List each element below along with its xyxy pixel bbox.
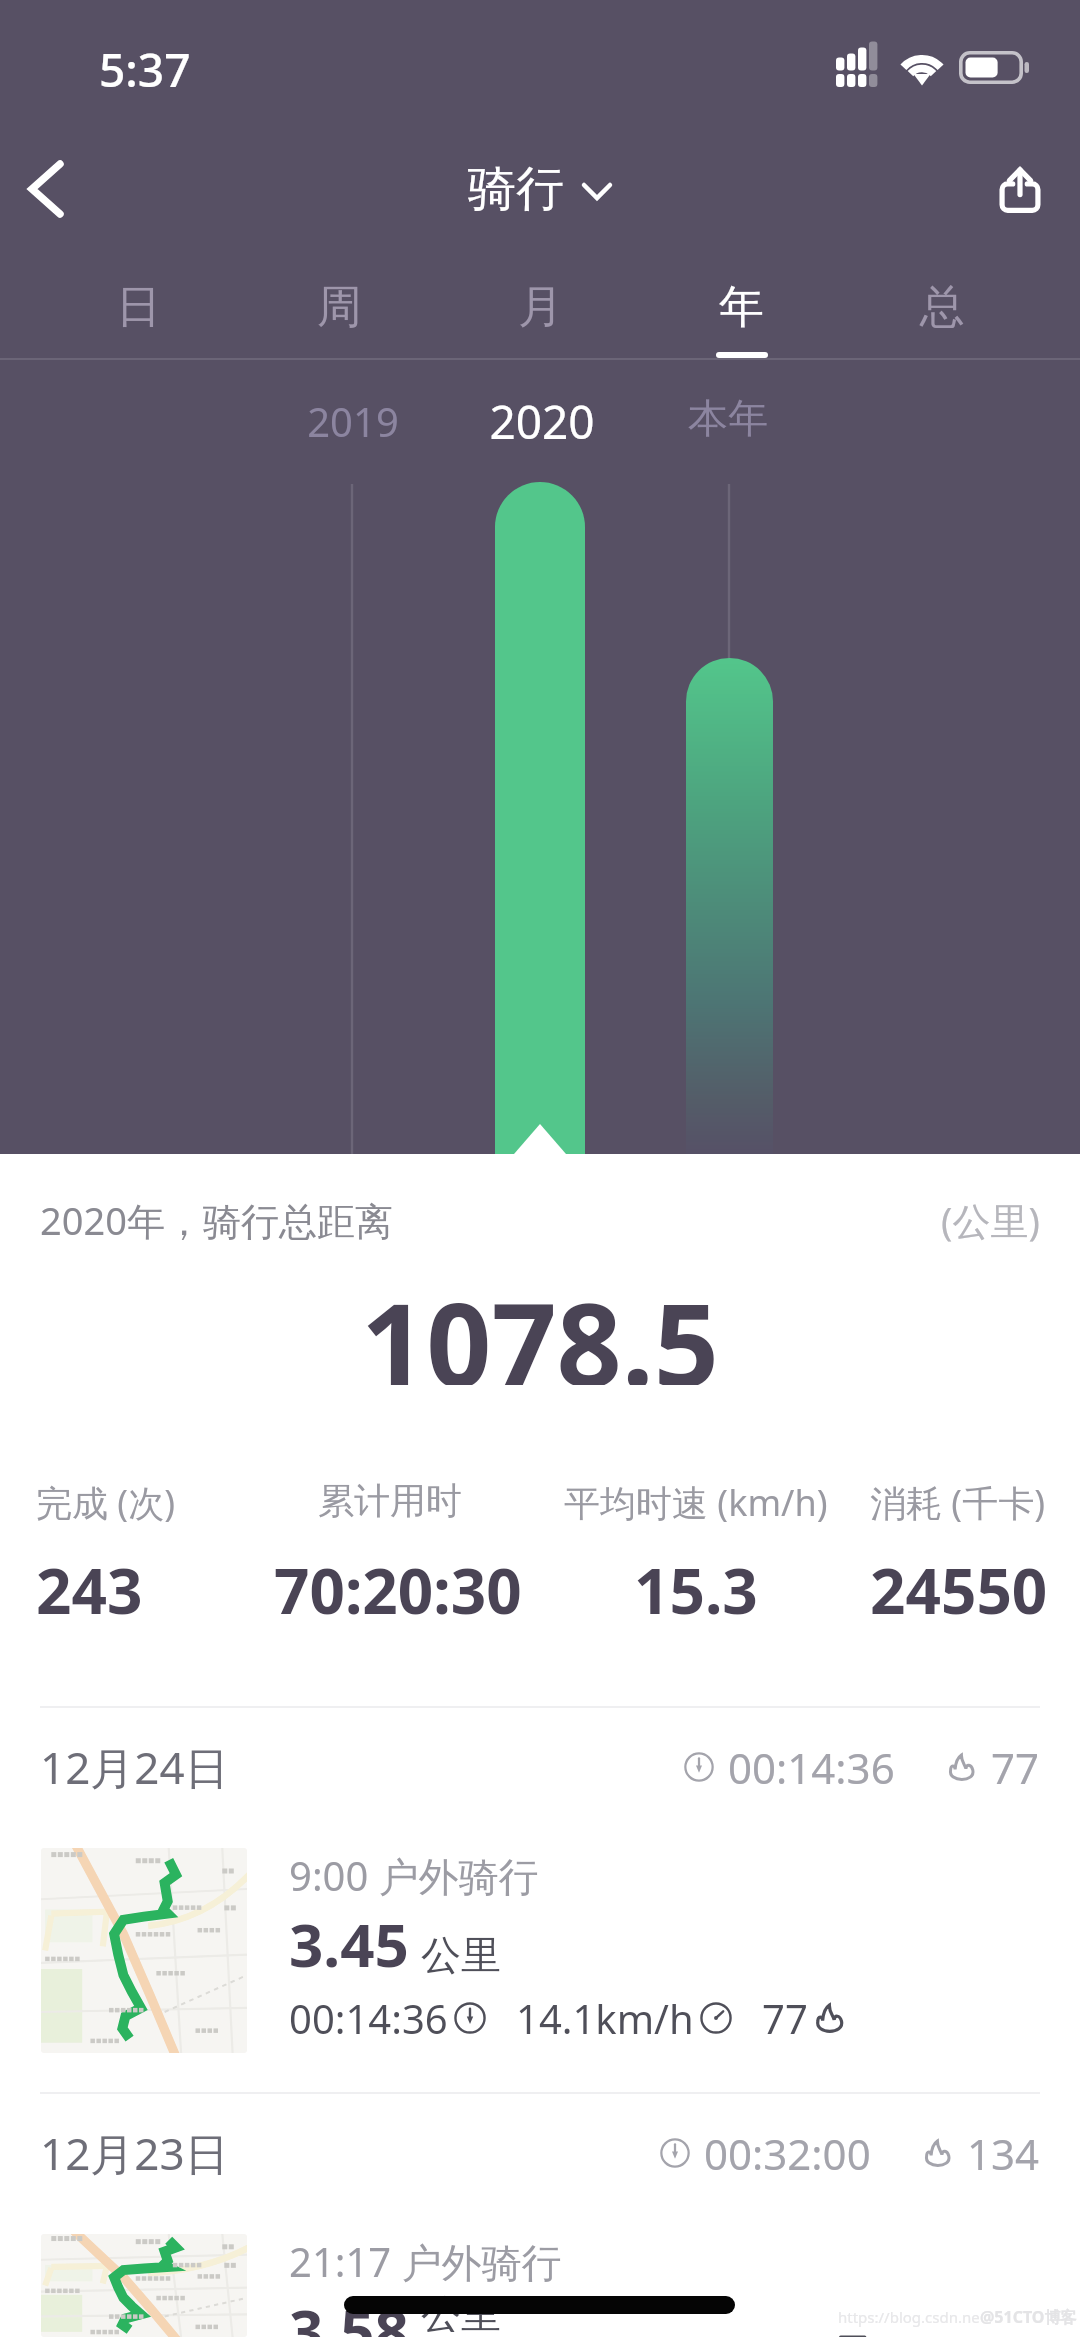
staticText: 1078.5 — [361, 1265, 720, 1385]
staticText: 5:37 — [99, 38, 191, 101]
staticText: 12月23日 — [40, 2123, 229, 2183]
staticText: 21:17 户外骑行 — [289, 2234, 562, 2289]
button[interactable]: 年 — [641, 260, 842, 360]
staticText: 134 — [967, 2125, 1040, 2182]
button[interactable]: 月 — [440, 260, 641, 360]
staticText: 月 — [518, 279, 563, 336]
button[interactable]: 总 — [842, 260, 1043, 360]
staticText: 00:14:36 — [728, 1739, 895, 1796]
staticText: 公里 — [421, 1930, 501, 1980]
staticText: 24550 — [870, 1548, 1048, 1632]
button[interactable]: 21:17 户外骑行 — [0, 2212, 1080, 2337]
staticText: 总 — [920, 279, 965, 336]
staticText: 00:32:00 — [704, 2125, 871, 2182]
staticText: 年 — [719, 279, 764, 336]
staticText: 公里 — [421, 2289, 501, 2332]
button[interactable]: 日 — [37, 260, 239, 360]
staticText: 2019 — [253, 394, 453, 448]
staticText: https://blog.csdn.ne — [838, 2307, 980, 2327]
staticText: 77 — [762, 1991, 808, 2045]
staticText: 3.58 — [289, 2289, 409, 2337]
button[interactable]: 周 — [239, 260, 440, 360]
staticText: 00:14:36 — [289, 1991, 448, 2045]
staticText: 77 — [991, 1739, 1040, 1796]
staticText: 平均时速 (km/h) — [564, 1478, 828, 1527]
button[interactable]: 9:00 户外骑行 — [0, 1826, 1080, 2092]
button[interactable]: Back — [0, 131, 104, 247]
staticText: 9:00 户外骑行 — [289, 1848, 539, 1903]
staticText: 消耗 (千卡) — [870, 1478, 1045, 1527]
staticText: 本年 — [628, 393, 828, 443]
staticText: 15.3 — [634, 1548, 758, 1632]
staticText: 243 — [36, 1548, 143, 1632]
staticText: 14.1km/h — [516, 1991, 694, 2045]
staticText: 70:20:30 — [274, 1548, 522, 1632]
staticText: 完成 (次) — [36, 1478, 175, 1527]
staticText: 2020年，骑行总距离 — [40, 1194, 393, 1246]
staticText: (公里) — [941, 1194, 1040, 1246]
staticText: 3.45 — [289, 1903, 409, 1985]
staticText: 累计用时 — [318, 1478, 462, 1523]
button[interactable]: Share — [962, 131, 1078, 247]
staticText: 2020 — [442, 390, 642, 453]
staticText: 周 — [317, 279, 362, 336]
staticText: 日 — [116, 279, 161, 336]
staticText: 骑行 — [468, 159, 564, 219]
staticText: @51CTO博客 — [980, 2306, 1077, 2328]
button[interactable]: 骑行 — [460, 151, 620, 227]
staticText: 12月24日 — [40, 1737, 229, 1797]
